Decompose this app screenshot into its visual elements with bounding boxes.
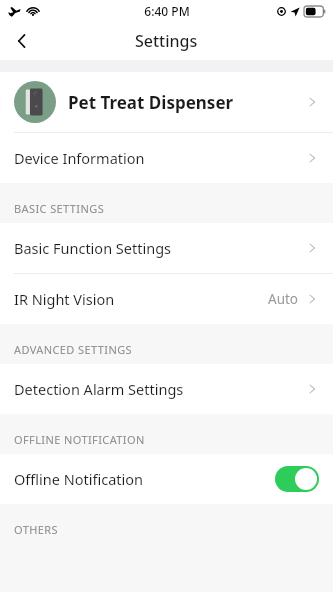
staticText: 6:40 PM [144,3,190,19]
button[interactable]: Back [0,22,44,60]
staticText: Basic Function Settings [14,238,305,258]
button[interactable]: IR Night Vision [0,274,333,324]
staticText: Offline Notification [14,469,275,489]
staticText: Settings [135,30,198,52]
staticText: IR Night Vision [14,289,268,309]
staticText: Pet Treat Dispenser [68,91,305,114]
button[interactable]: Device Information [0,133,333,183]
button[interactable]: Basic Function Settings [0,223,333,273]
staticText: OTHERS [14,522,58,537]
staticText: Detection Alarm Settings [14,379,305,399]
staticText: Device Information [14,148,305,168]
staticText: OFFLINE NOTIFICATION [14,432,145,447]
staticText: ADVANCED SETTINGS [14,342,132,357]
button[interactable]: Detection Alarm Settings [0,364,333,414]
staticText: BASIC SETTINGS [14,201,105,216]
button[interactable]: Offline Notification [0,454,333,504]
staticText: Auto [268,290,299,308]
button[interactable]: Pet Treat Dispenser [0,72,333,132]
